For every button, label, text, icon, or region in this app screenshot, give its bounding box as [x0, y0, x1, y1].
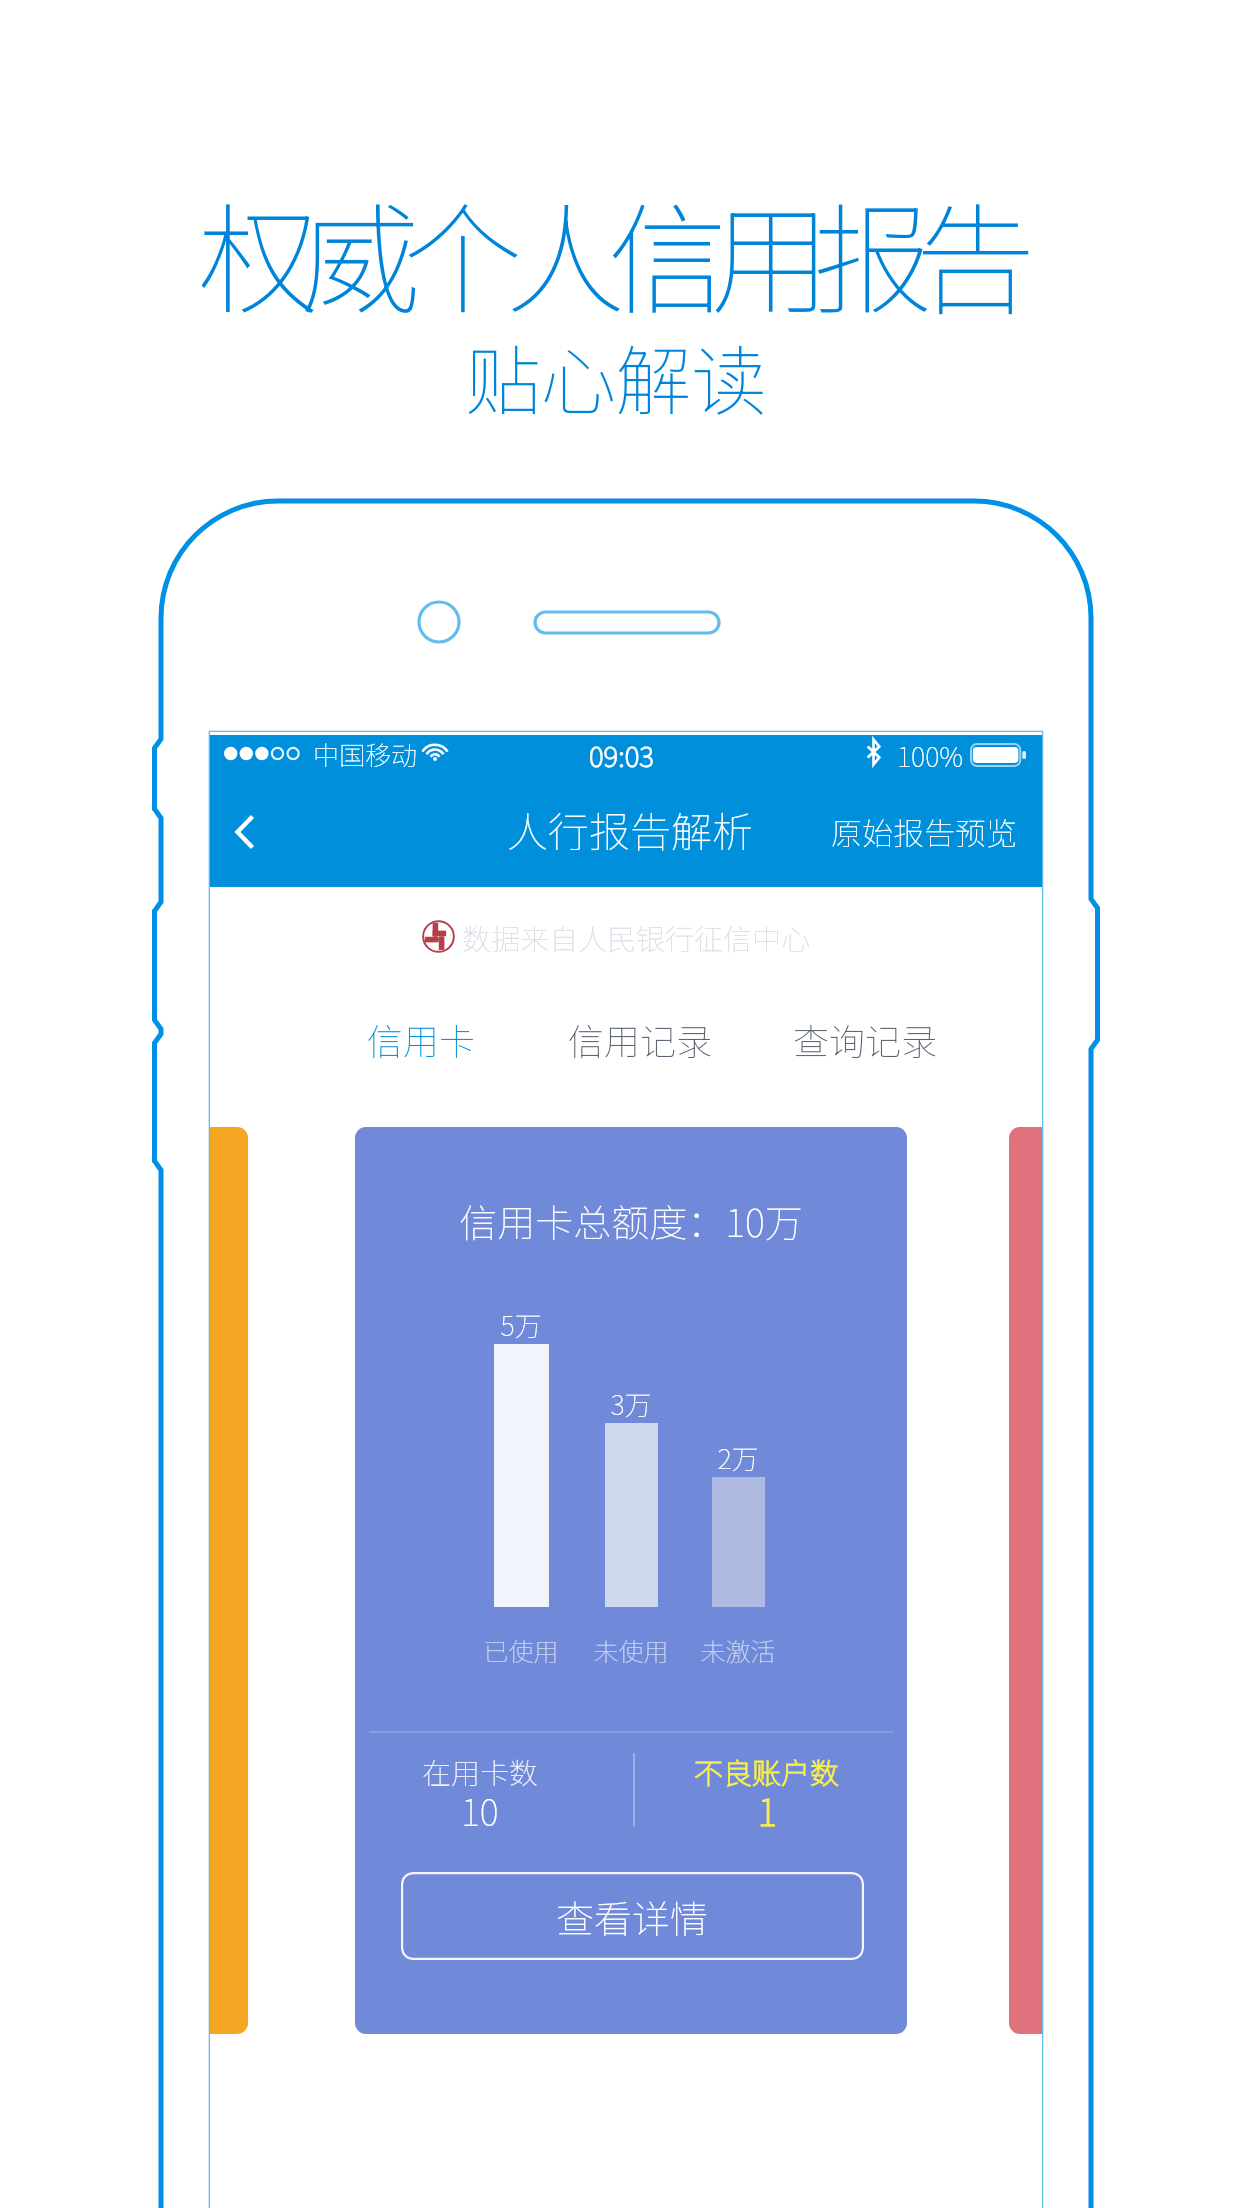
button[interactable]: Back — [214, 782, 276, 882]
staticText: 查询记录 — [793, 1013, 938, 1065]
button[interactable]: 查看详情 — [401, 1872, 864, 1960]
staticText: 贴心解读 — [465, 321, 767, 431]
staticText: 5万 — [461, 1305, 581, 1344]
staticText: 3万 — [571, 1384, 691, 1423]
staticText: 信用卡 — [367, 1013, 476, 1065]
staticText: 已使用 — [461, 1632, 581, 1668]
staticText: 信用卡总额度：10万 — [355, 1193, 907, 1248]
staticText: 100% — [897, 736, 963, 775]
staticText: 数据来自人民银行征信中心 — [462, 916, 811, 958]
staticText: 信用记录 — [568, 1013, 713, 1065]
staticText: 查看详情 — [556, 1889, 709, 1944]
staticText: 权威个人信用报告 — [198, 165, 1018, 339]
staticText: 1 — [758, 1784, 777, 1836]
button[interactable]: 信用卡 — [311, 1007, 531, 1071]
staticText: 10 — [461, 1784, 499, 1836]
staticText: 在用卡数 — [422, 1750, 539, 1792]
button[interactable]: 查询记录 — [755, 1007, 975, 1071]
button[interactable]: 信用记录 — [530, 1007, 750, 1071]
button[interactable]: 信用卡总额度：10万 — [355, 1127, 907, 2034]
staticText: 原始报告预览 — [831, 809, 1017, 854]
staticText: 人行报告解析 — [507, 799, 753, 858]
button[interactable] — [210, 1127, 248, 2034]
button[interactable]: 原始报告预览 — [820, 781, 1028, 881]
button[interactable] — [1009, 1127, 1042, 2034]
staticText: 09:03 — [589, 735, 654, 776]
staticText: 不良账户数 — [694, 1750, 840, 1792]
staticText: 2万 — [678, 1438, 798, 1477]
staticText: 中国移动 — [313, 735, 418, 773]
staticText: 未激活 — [678, 1632, 798, 1668]
staticText: 未使用 — [571, 1632, 691, 1668]
